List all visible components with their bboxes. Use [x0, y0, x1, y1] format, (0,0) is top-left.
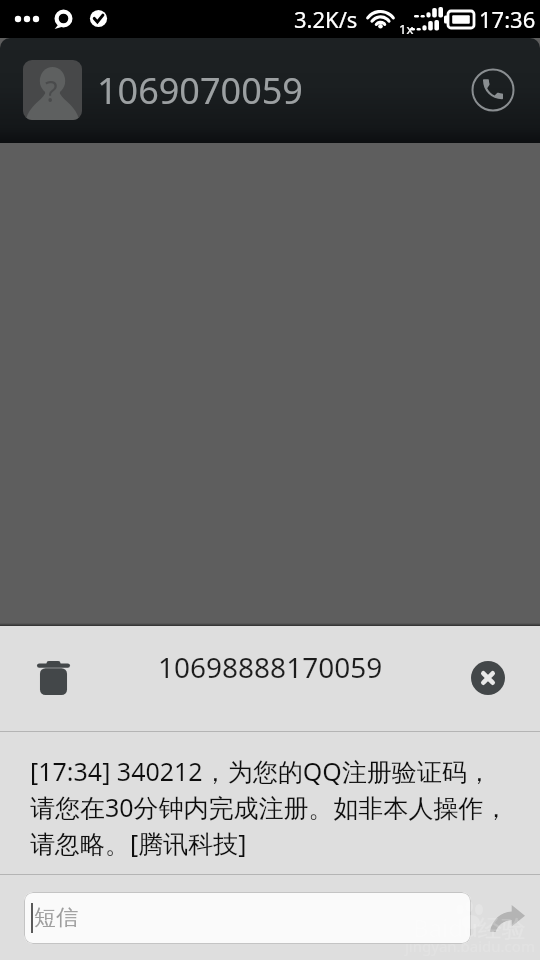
staticText: 1069070059 [97, 66, 303, 115]
staticText: jingyan.baidu.com [405, 936, 535, 956]
button[interactable]: Contact avatar [23, 60, 82, 120]
staticText: 10698888170059 [158, 648, 383, 686]
button[interactable]: Delete [17, 642, 89, 714]
staticText: 短信 [34, 904, 78, 932]
button[interactable]: Call [465, 62, 521, 118]
staticText: 3.2K/s [294, 4, 358, 34]
button[interactable]: 短信 [24, 892, 471, 944]
staticText: Baidu经验 [413, 911, 526, 944]
staticText: [17:34] 340212，为您的QQ注册验证码，请您在30分钟内完成注册。如… [30, 754, 510, 861]
button[interactable]: Close [471, 661, 505, 695]
staticText: 17:36 [479, 4, 536, 34]
button[interactable]: Send [481, 891, 533, 945]
staticText: ? [45, 71, 58, 110]
staticText: 1x [399, 20, 414, 38]
